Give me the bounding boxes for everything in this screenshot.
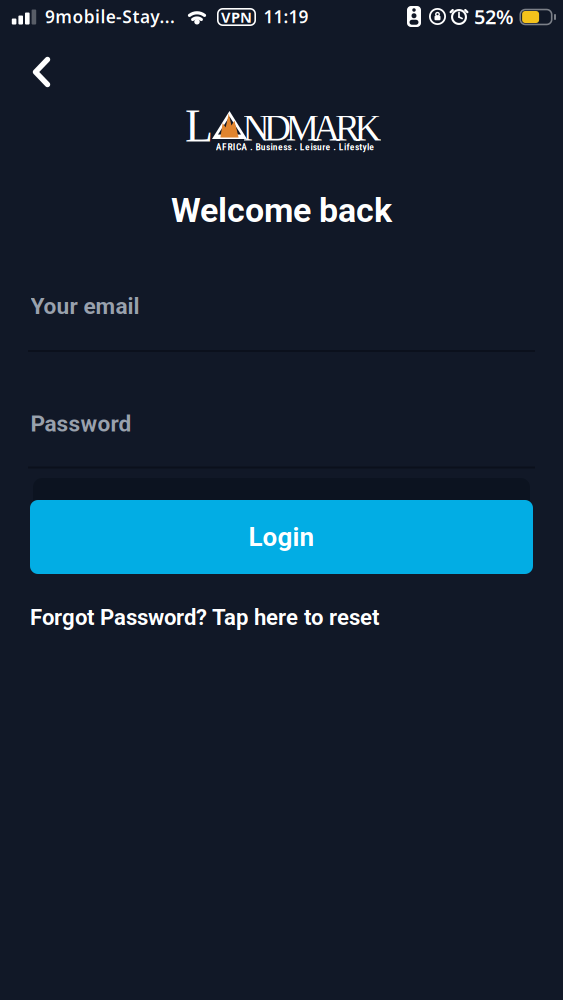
staticText: Your email bbox=[30, 293, 139, 320]
button[interactable]: Forgot Password? Tap here to reset bbox=[30, 604, 379, 630]
staticText: VPN bbox=[221, 7, 252, 27]
button[interactable] bbox=[33, 57, 50, 87]
staticText: 11:19 bbox=[263, 5, 308, 28]
staticText: Forgot Password? Tap here to reset bbox=[30, 604, 379, 630]
button[interactable]: Password bbox=[28, 410, 535, 468]
button[interactable]: Your email bbox=[28, 293, 535, 352]
button[interactable]: Login bbox=[30, 500, 533, 574]
staticText: Password bbox=[30, 410, 131, 437]
staticText: L bbox=[185, 100, 213, 151]
staticText: 9mobile-Stay... bbox=[45, 5, 175, 28]
staticText: Welcome back bbox=[171, 191, 392, 230]
staticText: NDMARK bbox=[242, 107, 381, 149]
staticText: Login bbox=[248, 522, 314, 552]
staticText: AFRICA . Business . Leisure . Lifestyle bbox=[216, 141, 374, 153]
staticText: 52% bbox=[474, 3, 514, 30]
